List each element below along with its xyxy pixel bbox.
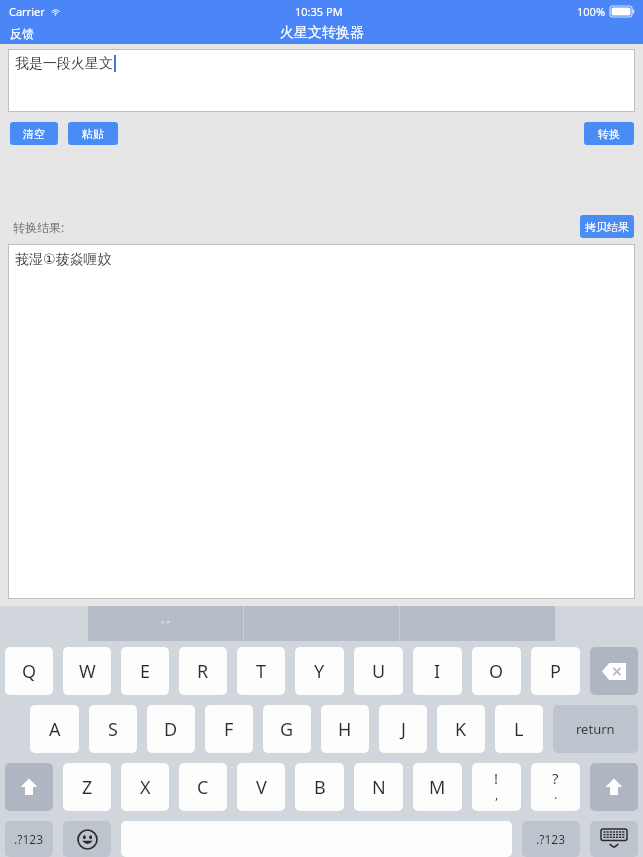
button[interactable]: V: [237, 763, 285, 811]
button[interactable]: G: [263, 705, 311, 753]
button[interactable]: 莪湿①菝焱喱妏: [8, 244, 635, 599]
staticText: .: [554, 785, 558, 803]
staticText: N: [372, 775, 386, 800]
button[interactable]: F: [205, 705, 253, 753]
staticText: F: [224, 717, 234, 742]
staticText: R: [197, 659, 209, 684]
staticText: P: [550, 659, 561, 684]
staticText: return: [576, 720, 615, 738]
staticText: K: [455, 717, 467, 742]
staticText: 清空: [23, 127, 45, 141]
button[interactable]: ?: [531, 763, 580, 811]
button[interactable]: Y: [295, 647, 344, 695]
button[interactable]: return: [553, 705, 638, 753]
staticText: 反馈: [10, 26, 34, 41]
staticText: .?123: [14, 831, 44, 847]
button[interactable]: 拷贝结果: [580, 215, 634, 238]
staticText: J: [401, 717, 406, 742]
button[interactable]: Q: [5, 647, 53, 695]
staticText: Y: [314, 659, 325, 684]
button[interactable]: Backspace: [590, 647, 638, 695]
staticText: 火星文转换器: [280, 24, 364, 42]
button[interactable]: Shift: [5, 763, 53, 811]
button[interactable]: H: [321, 705, 369, 753]
button[interactable]: !: [472, 763, 521, 811]
staticText: I: [434, 659, 441, 684]
button[interactable]: J: [379, 705, 427, 753]
staticText: 100%: [577, 4, 606, 19]
button[interactable]: W: [63, 647, 111, 695]
staticText: C: [197, 775, 209, 800]
staticText: T: [256, 659, 267, 684]
button[interactable]: C: [179, 763, 227, 811]
staticText: “ ”: [161, 618, 170, 630]
button[interactable]: .?123: [5, 821, 53, 857]
staticText: M: [429, 775, 446, 800]
staticText: 拷贝结果: [585, 220, 629, 234]
staticText: ?: [552, 768, 559, 788]
staticText: G: [280, 717, 294, 742]
staticText: W: [79, 659, 96, 684]
button[interactable]: U: [354, 647, 403, 695]
button[interactable]: .?123: [522, 821, 580, 857]
button[interactable]: Dismiss keyboard: [590, 821, 638, 857]
staticText: 10:35 PM: [295, 4, 343, 19]
staticText: X: [140, 775, 151, 800]
staticText: Carrier: [9, 4, 45, 19]
staticText: Z: [82, 775, 93, 800]
staticText: A: [49, 717, 61, 742]
button[interactable]: 转换: [584, 122, 634, 145]
staticText: O: [489, 659, 504, 684]
button[interactable]: 粘贴: [68, 122, 118, 145]
button[interactable]: E: [121, 647, 169, 695]
staticText: H: [338, 717, 352, 742]
button[interactable]: A: [30, 705, 79, 753]
button[interactable]: Emoji: [63, 821, 111, 857]
staticText: U: [372, 659, 386, 684]
staticText: B: [314, 775, 326, 800]
button[interactable]: P: [531, 647, 580, 695]
button[interactable]: B: [295, 763, 344, 811]
button[interactable]: D: [147, 705, 195, 753]
staticText: E: [140, 659, 151, 684]
button[interactable]: X: [121, 763, 169, 811]
button[interactable]: T: [237, 647, 285, 695]
button[interactable]: K: [437, 705, 485, 753]
button[interactable]: Z: [63, 763, 111, 811]
staticText: D: [164, 717, 178, 742]
staticText: 转换: [598, 127, 620, 141]
button[interactable]: L: [495, 705, 543, 753]
staticText: !: [494, 768, 499, 788]
staticText: S: [108, 717, 118, 742]
button[interactable]: 反馈: [0, 24, 44, 43]
staticText: ,: [495, 785, 499, 803]
staticText: 我是一段火星文: [15, 55, 113, 73]
staticText: 莪湿①菝焱喱妏: [15, 251, 112, 269]
button[interactable]: 清空: [10, 122, 58, 145]
button[interactable]: N: [354, 763, 403, 811]
button[interactable]: Shift: [590, 763, 638, 811]
button[interactable]: R: [179, 647, 227, 695]
staticText: 转换结果:: [13, 219, 65, 235]
staticText: .?123: [536, 831, 566, 847]
button[interactable]: O: [472, 647, 521, 695]
staticText: V: [256, 775, 267, 800]
button[interactable]: 我是一段火星文: [8, 49, 635, 112]
staticText: Q: [22, 659, 37, 684]
staticText: 粘贴: [82, 127, 104, 141]
button[interactable]: M: [413, 763, 462, 811]
staticText: L: [514, 717, 524, 742]
button[interactable]: I: [413, 647, 462, 695]
button[interactable]: S: [89, 705, 137, 753]
